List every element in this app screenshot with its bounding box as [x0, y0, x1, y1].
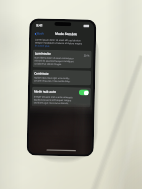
staticText: Lorem ipsum dolor sit amet elit sed do e… [35, 38, 81, 42]
staticText: ornare vel eu leo. Cras mattis dolor [34, 79, 70, 83]
staticText: Luminosite [35, 51, 52, 56]
staticText: Contraste [34, 71, 49, 76]
staticText: 9:41 [36, 23, 43, 28]
staticText: ut labore et dolore magna [34, 62, 62, 66]
staticText: Mode Sombre [55, 32, 77, 36]
button[interactable]: Back [34, 31, 44, 36]
staticText: Integer posuere erat a ante venenatis [34, 95, 73, 99]
button[interactable]: Mode nuit auto [32, 86, 91, 108]
staticText: dapibus posuere velit aliquet magna [34, 98, 72, 102]
other: Battery [83, 24, 89, 27]
button[interactable]: Contraste [32, 69, 91, 86]
staticText: elit sed do eiusmod tempor incididunt [34, 59, 75, 63]
button[interactable]: En savoir plus [35, 44, 50, 48]
button[interactable]: Luminosite [32, 49, 92, 69]
staticText: Back [37, 31, 44, 36]
staticText: Nullam quis risus eget urna mollis [34, 76, 70, 80]
staticText: Nam libero dolor sit amet consectetur [35, 56, 74, 60]
staticText: 20 % [84, 53, 90, 57]
button[interactable]: Toggle night mode [79, 89, 89, 96]
staticText: tempor incididunt ut labore et dolore ma… [35, 41, 83, 45]
staticText: Mode nuit auto [34, 89, 57, 94]
staticText: En savoir plus [35, 44, 50, 48]
staticText: sed diam eget risus varius blandit [34, 101, 69, 105]
